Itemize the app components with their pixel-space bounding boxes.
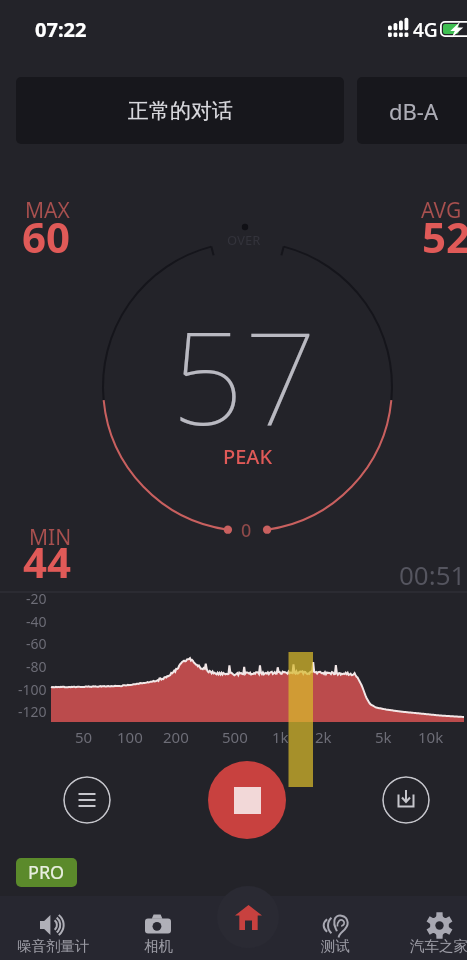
staticText: PRO: [28, 860, 65, 885]
staticText: 44: [23, 533, 72, 590]
staticText: 相机: [144, 937, 173, 955]
staticText: 测试: [321, 937, 350, 955]
button[interactable]: 正常的对话: [16, 77, 344, 144]
staticText: 4G: [413, 17, 438, 43]
staticText: 100: [117, 727, 143, 747]
staticText: 10k: [418, 727, 444, 747]
staticText: 2k: [315, 727, 332, 747]
staticText: 0: [241, 518, 252, 543]
staticText: 5k: [375, 727, 392, 747]
staticText: 汽车之家: [410, 937, 467, 955]
staticText: -40: [26, 612, 47, 631]
button[interactable]: Home: [217, 886, 279, 948]
staticText: 噪音剂量计: [17, 937, 90, 955]
staticText: OVER: [227, 231, 261, 249]
button[interactable]: 汽车之家: [392, 900, 467, 960]
button[interactable]: dB-A: [357, 77, 467, 144]
staticText: -20: [26, 589, 47, 608]
staticText: 200: [163, 727, 189, 747]
staticText: 正常的对话: [128, 98, 233, 124]
staticText: -100: [18, 680, 47, 699]
staticText: dB-A: [389, 96, 438, 126]
staticText: 52: [422, 208, 467, 265]
staticText: 07:22: [35, 16, 87, 43]
staticText: 50: [75, 727, 93, 747]
button[interactable]: Save: [382, 776, 430, 824]
staticText: -120: [18, 702, 47, 721]
staticText: 57: [171, 288, 317, 462]
button[interactable]: PRO: [16, 858, 77, 887]
staticText: AVG: [421, 196, 462, 225]
staticText: 00:51: [399, 557, 466, 592]
staticText: -80: [26, 657, 47, 676]
staticText: 60: [22, 208, 71, 265]
staticText: 500: [222, 727, 248, 747]
staticText: 1k: [272, 727, 289, 747]
button[interactable]: 测试: [288, 900, 382, 960]
button[interactable]: Menu: [63, 776, 111, 824]
staticText: MIN: [29, 523, 72, 552]
button[interactable]: 相机: [111, 900, 205, 960]
staticText: PEAK: [223, 443, 273, 470]
staticText: -60: [26, 634, 47, 653]
button[interactable]: 噪音剂量计: [6, 900, 100, 960]
button[interactable]: Stop: [208, 761, 286, 839]
staticText: MAX: [25, 196, 70, 225]
